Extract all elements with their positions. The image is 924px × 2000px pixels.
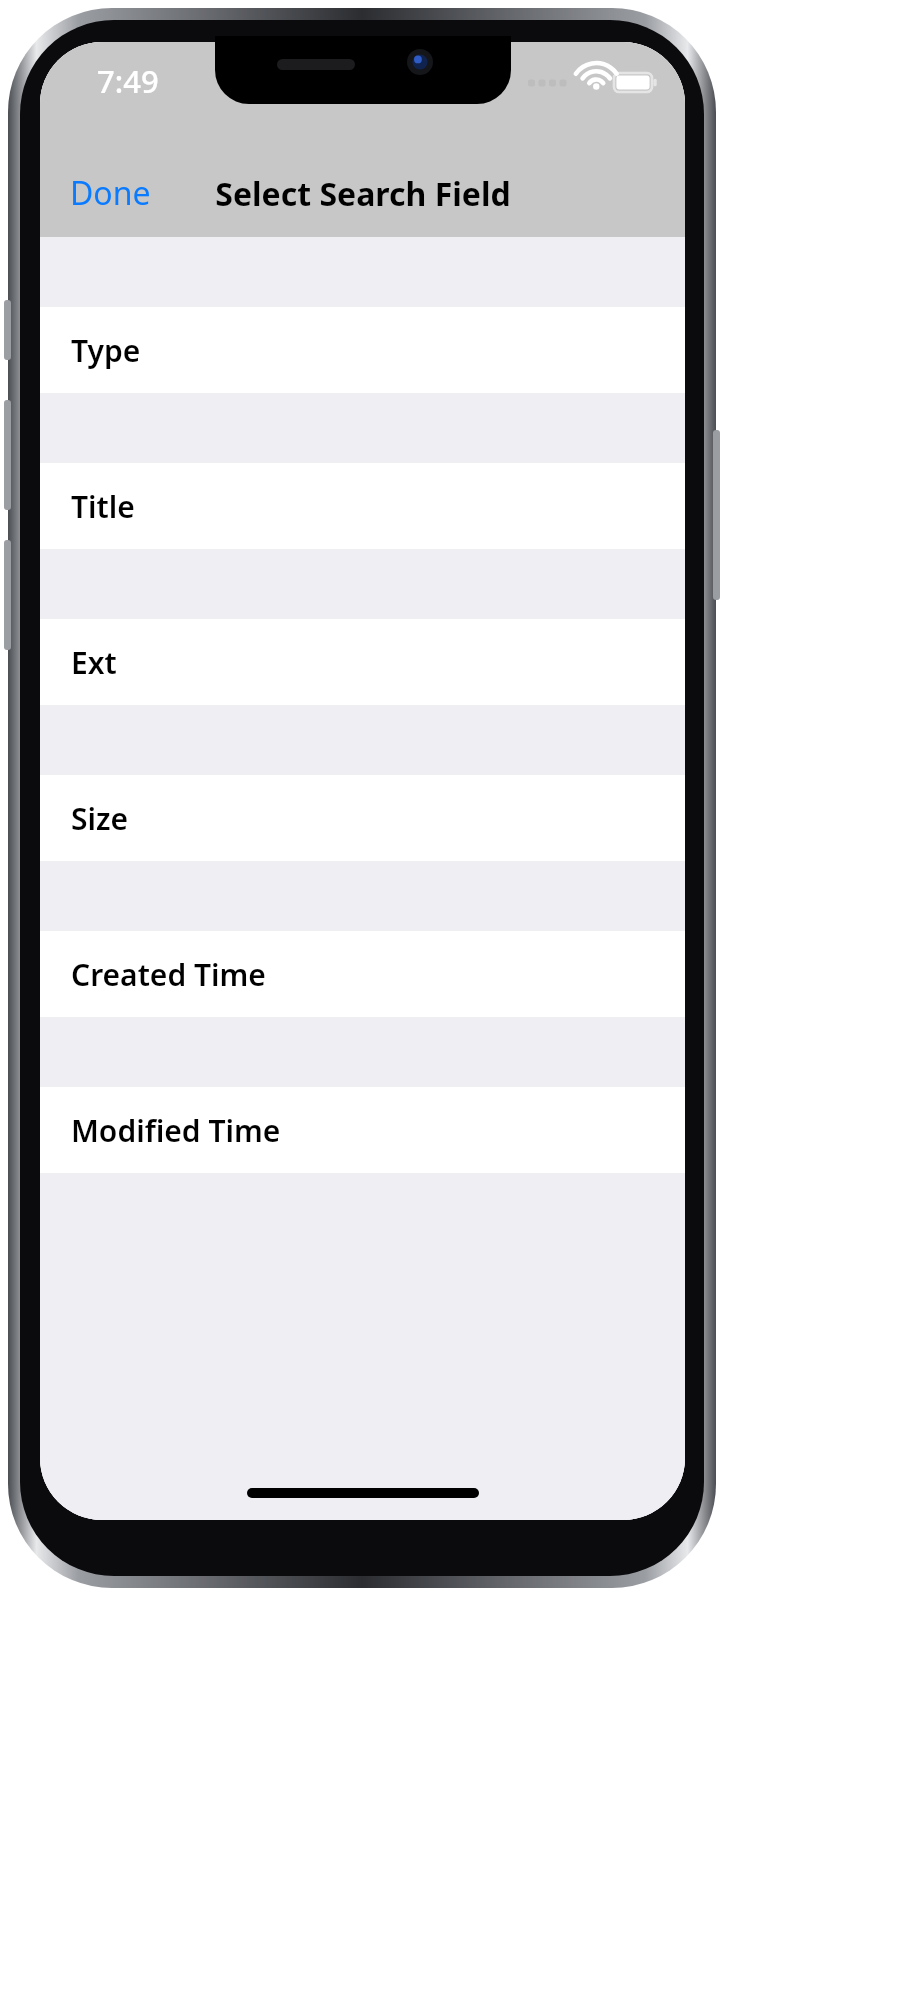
staticText: Modified Time	[71, 1110, 281, 1151]
button[interactable]: Title	[40, 463, 685, 549]
button[interactable]: Type	[40, 307, 685, 393]
button[interactable]: Modified Time	[40, 1087, 685, 1173]
staticText: Size	[71, 798, 129, 839]
button[interactable]: Done	[58, 163, 163, 223]
staticText: Done	[70, 171, 151, 215]
button[interactable]: Created Time	[40, 931, 685, 1017]
staticText: Select Search Field	[215, 172, 511, 216]
staticText: 7:49	[97, 60, 159, 102]
button[interactable]: Size	[40, 775, 685, 861]
staticText: Ext	[71, 642, 117, 683]
staticText: Title	[71, 486, 135, 527]
staticText: Type	[71, 330, 141, 371]
button[interactable]: Ext	[40, 619, 685, 705]
staticText: Created Time	[71, 954, 266, 995]
